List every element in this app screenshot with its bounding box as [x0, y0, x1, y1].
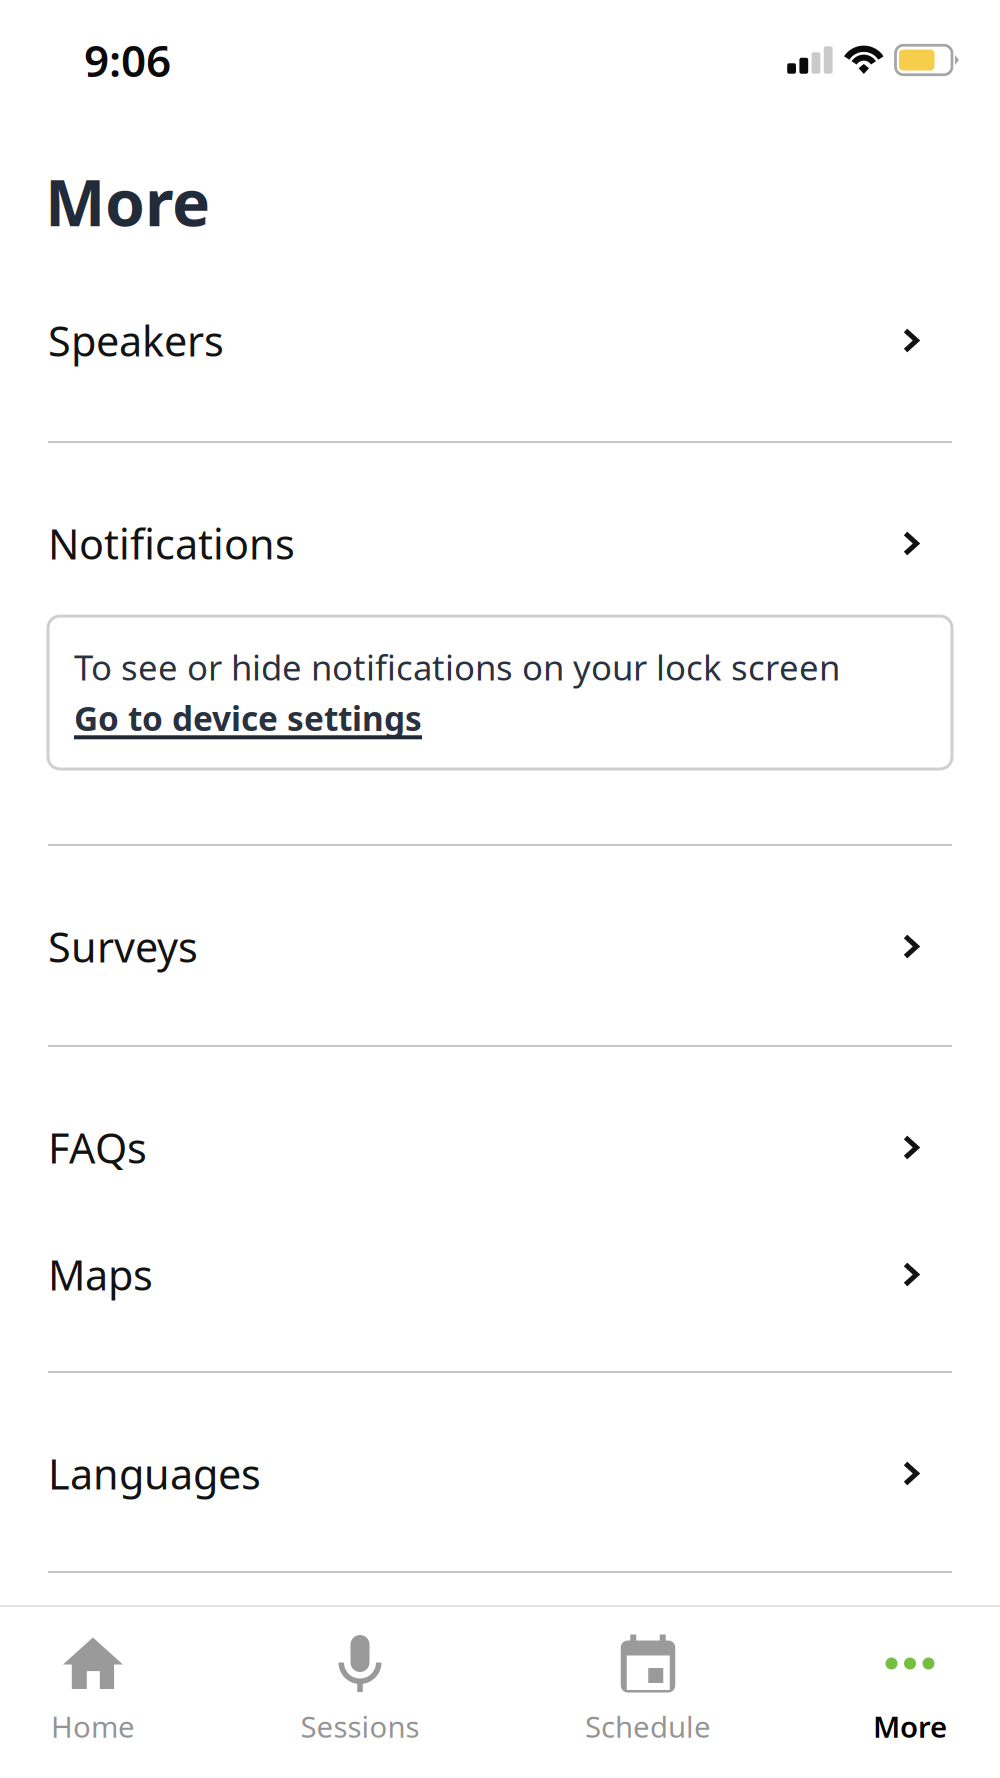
staticText: Home	[51, 1707, 135, 1746]
button[interactable]: Sessions	[285, 1607, 435, 1778]
staticText: 9:06	[84, 31, 171, 89]
staticText: More	[45, 159, 210, 244]
button[interactable]: Maps	[0, 1211, 1000, 1338]
button[interactable]: Languages	[0, 1410, 1000, 1537]
staticText: Schedule	[585, 1707, 711, 1746]
staticText: Speakers	[48, 313, 224, 368]
button[interactable]: More	[835, 1607, 985, 1778]
button[interactable]: FAQs	[0, 1084, 1000, 1211]
staticText: More	[873, 1707, 947, 1746]
staticText: Maps	[48, 1247, 153, 1302]
button[interactable]: Home	[18, 1607, 168, 1778]
button[interactable]: Notifications	[0, 480, 1000, 607]
staticText: Notifications	[48, 516, 295, 571]
staticText: Surveys	[48, 919, 198, 974]
staticText: Languages	[48, 1446, 261, 1501]
staticText: Go to device settings	[74, 696, 422, 740]
staticText: To see or hide notifications on your loc…	[74, 644, 840, 690]
button[interactable]: Speakers	[0, 277, 1000, 404]
button[interactable]: Surveys	[0, 883, 1000, 1010]
staticText: FAQs	[48, 1120, 147, 1175]
button[interactable]: Schedule	[573, 1607, 723, 1778]
staticText: Sessions	[300, 1707, 419, 1746]
button[interactable]: To see or hide notifications on your loc…	[48, 616, 952, 769]
